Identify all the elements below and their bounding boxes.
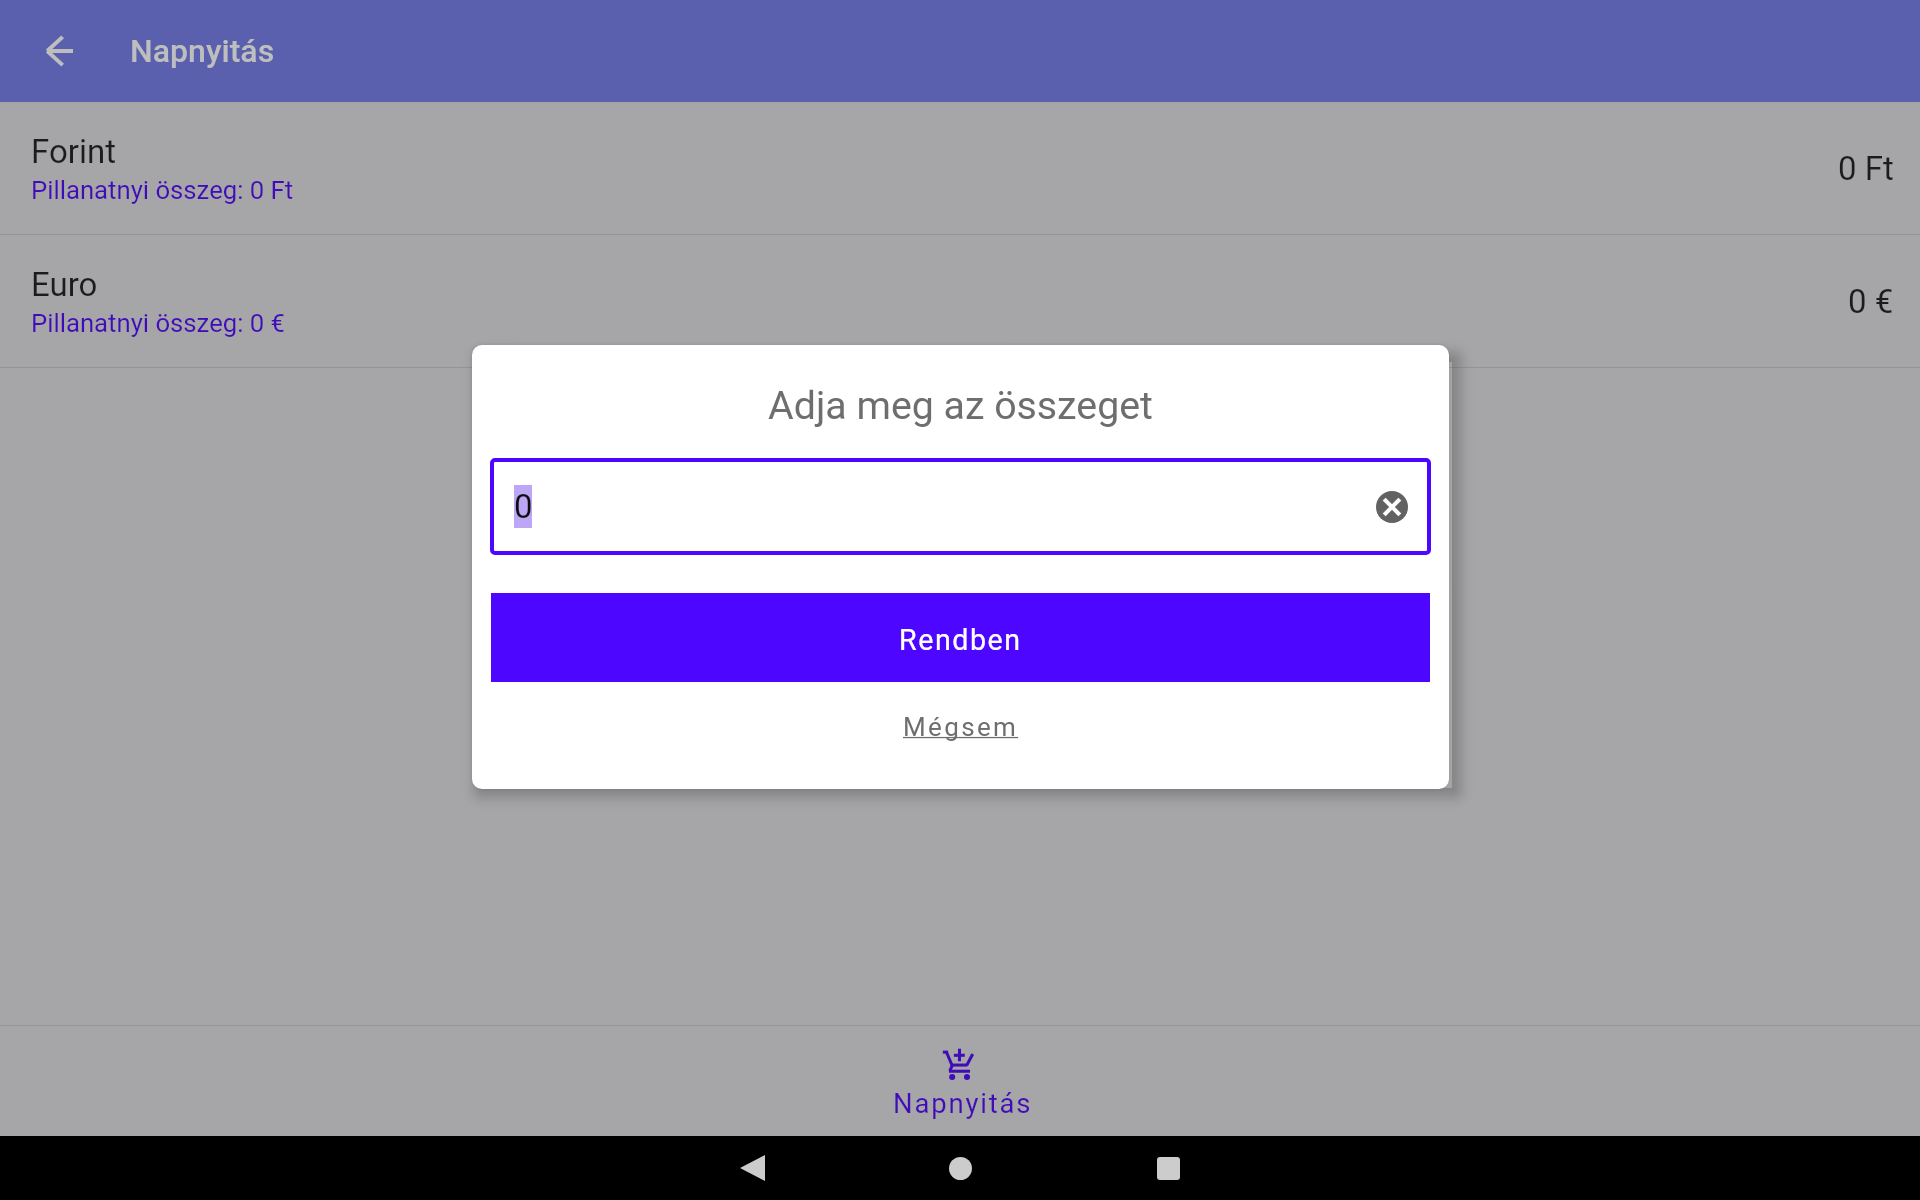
button[interactable]: Rendben — [491, 593, 1430, 682]
staticText: Pillanatnyi összeg: 0 Ft — [31, 175, 294, 205]
staticText: 0 — [514, 487, 532, 526]
button[interactable]: 0 — [490, 458, 1431, 555]
button[interactable]: Clear — [1369, 484, 1415, 530]
staticText: Mégsem — [903, 712, 1019, 742]
staticText: Rendben — [899, 623, 1022, 657]
staticText: Euro — [31, 265, 98, 304]
button[interactable]: Forint — [0, 102, 1920, 234]
staticText: Napnyitás — [130, 32, 275, 70]
button[interactable]: Back — [24, 15, 96, 87]
staticText: Forint — [31, 132, 116, 171]
staticText: Pillanatnyi összeg: 0 € — [31, 308, 286, 338]
button[interactable]: Recents — [1118, 1136, 1218, 1200]
staticText: 0 Ft — [1838, 149, 1894, 188]
button[interactable]: Home — [910, 1136, 1010, 1200]
button[interactable]: Euro — [0, 235, 1920, 367]
button[interactable]: Napnyitás — [860, 1038, 1060, 1125]
staticText: Napnyitás — [893, 1087, 1033, 1119]
staticText: 0 € — [1848, 282, 1894, 321]
button[interactable]: Back — [702, 1136, 802, 1200]
staticText: Adja meg az összeget — [472, 383, 1449, 429]
button[interactable]: Mégsem — [883, 702, 1039, 752]
